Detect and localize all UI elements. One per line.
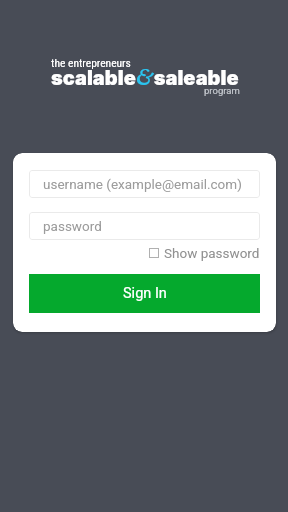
button[interactable]: username (example@email.com) [29, 170, 260, 198]
button[interactable]: Sign In [29, 274, 260, 313]
staticText: Show password [164, 245, 260, 261]
staticText: the entrepreneurs [51, 56, 131, 69]
staticText: password [43, 218, 102, 234]
staticText: program [204, 85, 240, 96]
button[interactable]: password [29, 212, 260, 240]
staticText: username (example@email.com) [43, 176, 242, 192]
staticText: Sign In [123, 285, 167, 302]
staticText: scalable&saleable [51, 59, 239, 93]
button[interactable]: Show password [147, 243, 262, 263]
